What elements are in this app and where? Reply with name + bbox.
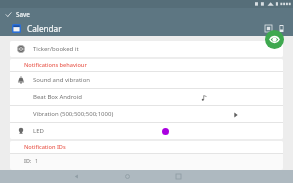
staticText: LED — [33, 127, 44, 135]
staticText: Save — [16, 10, 30, 18]
staticText: Sound and vibration — [33, 76, 90, 84]
staticText: 1 — [35, 157, 39, 164]
button[interactable]: Save — [0, 8, 36, 20]
staticText: Vibration (500;500;500;1000) — [33, 110, 114, 118]
staticText: Beat Box Android — [33, 93, 82, 101]
staticText: Notifications behaviour — [24, 61, 87, 69]
button[interactable]: More options — [275, 22, 288, 35]
button[interactable]: Test vibration — [230, 109, 241, 120]
button[interactable]: Templates — [262, 22, 275, 35]
staticText: Notification IDs — [24, 143, 66, 151]
button[interactable]: Beat Box Android — [10, 89, 283, 105]
staticText: Ticker/booked it — [33, 45, 79, 53]
staticText: Calendar — [27, 23, 62, 34]
button[interactable]: Preview notification — [265, 30, 284, 49]
button[interactable]: Vibration (500;500;500;1000) — [10, 106, 283, 122]
button[interactable]: LED — [10, 123, 283, 139]
button[interactable]: Choose sound — [198, 92, 209, 103]
button[interactable]: Home — [121, 170, 134, 183]
button[interactable]: Back — [70, 170, 83, 183]
staticText: ID: — [24, 157, 32, 164]
button[interactable]: ID: — [10, 154, 283, 170]
button[interactable]: Sound and vibration — [10, 72, 283, 88]
button[interactable]: Ticker/booked it — [10, 41, 283, 57]
button[interactable]: Recent apps — [172, 170, 185, 183]
